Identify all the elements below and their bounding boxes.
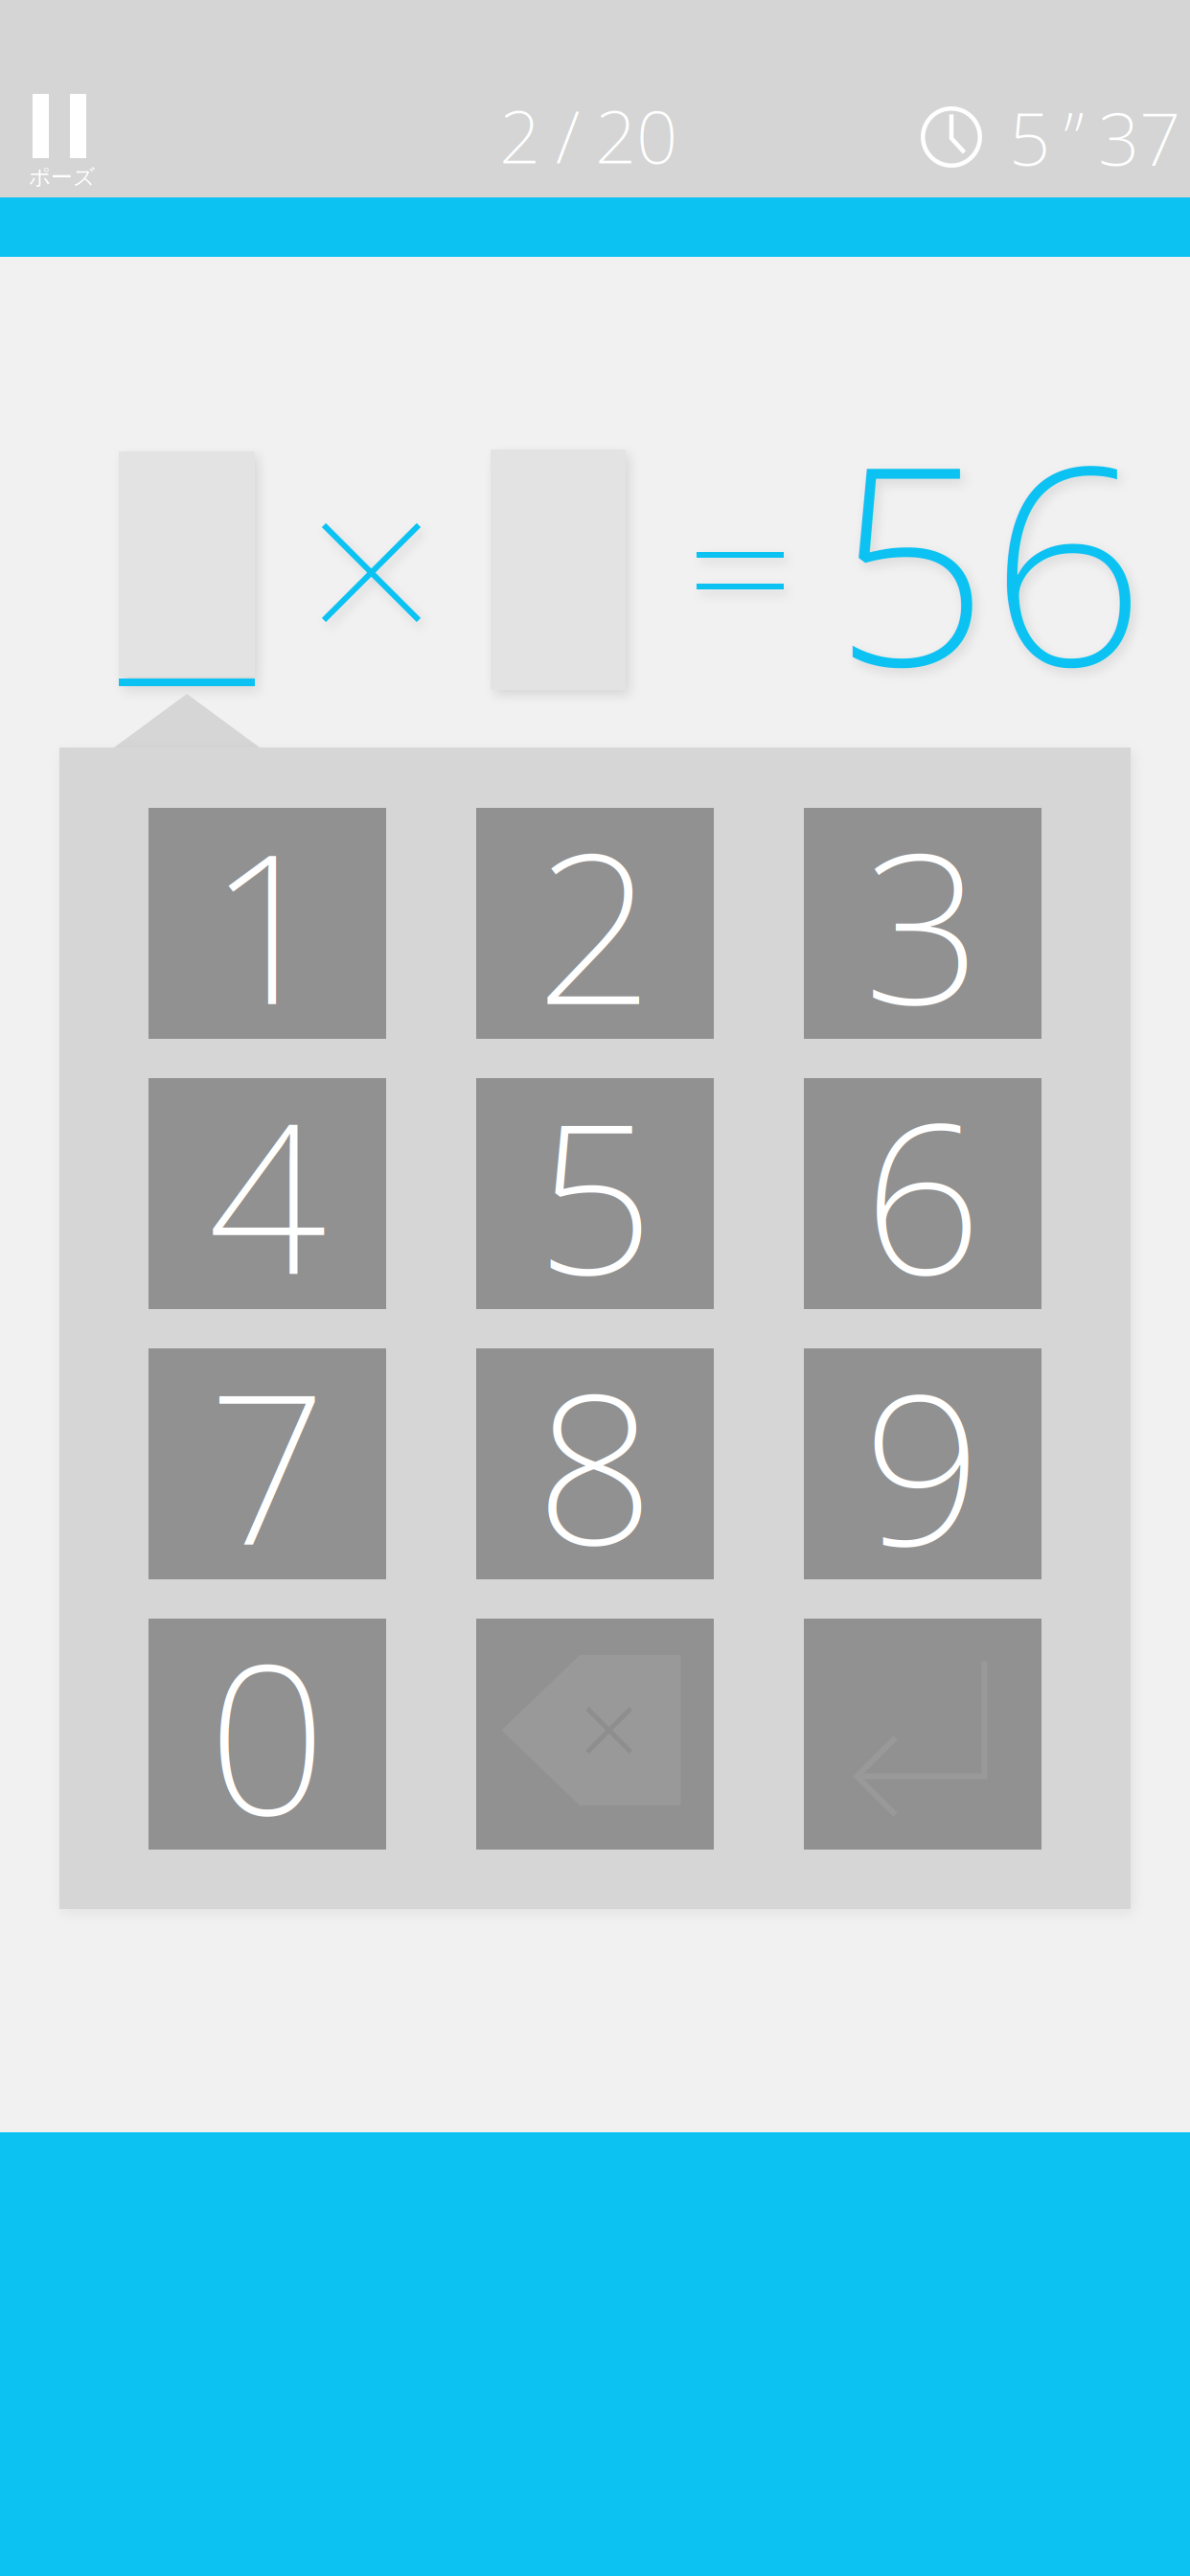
button[interactable]: 1 bbox=[149, 808, 386, 1039]
button[interactable]: 2 bbox=[476, 808, 714, 1039]
button[interactable]: 9 bbox=[804, 1348, 1041, 1579]
button[interactable]: 3 bbox=[804, 808, 1041, 1039]
staticText: ポーズ bbox=[29, 164, 95, 191]
staticText: 5 bbox=[536, 1055, 654, 1332]
staticText: / bbox=[556, 87, 580, 183]
staticText: 37 bbox=[1098, 89, 1180, 185]
button[interactable]: 4 bbox=[149, 1078, 386, 1309]
staticText: 6 bbox=[863, 1055, 982, 1332]
button[interactable]: Pause bbox=[29, 94, 144, 205]
staticText: 9 bbox=[863, 1326, 982, 1602]
staticText: 3 bbox=[863, 785, 982, 1062]
button[interactable]: Delete bbox=[476, 1619, 714, 1850]
staticText: 7 bbox=[208, 1326, 327, 1602]
staticText: 2 bbox=[499, 87, 540, 183]
staticText: 5 bbox=[1009, 89, 1050, 185]
button[interactable]: 7 bbox=[149, 1348, 386, 1579]
staticText: 20 bbox=[595, 87, 677, 183]
staticText: ” bbox=[1064, 89, 1085, 185]
staticText: 56 bbox=[833, 376, 1145, 741]
staticText: 8 bbox=[536, 1326, 654, 1602]
button[interactable]: 6 bbox=[804, 1078, 1041, 1309]
staticText: 4 bbox=[208, 1055, 327, 1332]
button[interactable]: 8 bbox=[476, 1348, 714, 1579]
button[interactable]: 0 bbox=[149, 1619, 386, 1850]
button[interactable]: 5 bbox=[476, 1078, 714, 1309]
staticText: 1 bbox=[208, 785, 327, 1062]
staticText: 2 bbox=[536, 785, 654, 1062]
staticText: 0 bbox=[208, 1596, 327, 1872]
